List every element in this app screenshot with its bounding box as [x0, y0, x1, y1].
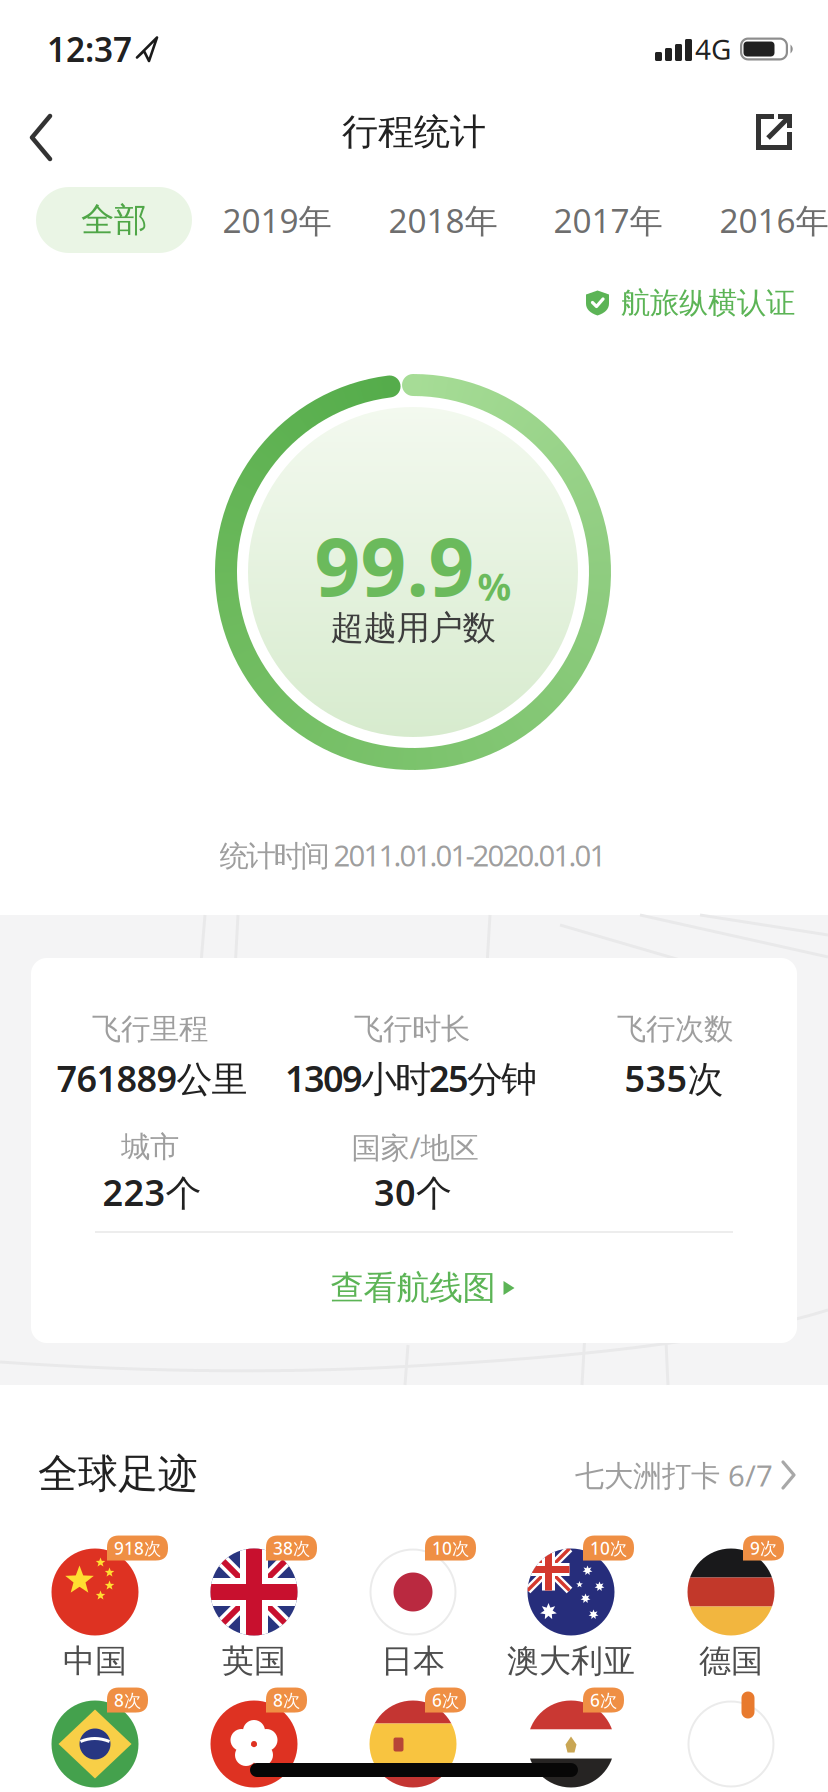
button[interactable]: 七大洲打卡 6/7 [475, 1453, 795, 1497]
staticText: % [477, 561, 511, 611]
staticText: 99.9 [314, 512, 474, 618]
button[interactable]: Share [756, 114, 792, 150]
staticText: 七大洲打卡 6/7 [575, 1455, 773, 1494]
button[interactable]: 2016年 [719, 187, 828, 253]
button[interactable]: 全部 [36, 187, 192, 253]
staticText: 8次 [114, 1688, 141, 1711]
staticText: 2017年 [553, 198, 662, 242]
button[interactable]: 航旅纵横认证 [586, 285, 795, 321]
staticText: 8次 [273, 1688, 300, 1711]
staticText: 全部 [81, 199, 147, 240]
staticText: 761889公里 [56, 1054, 247, 1102]
staticText: 10次 [590, 1536, 627, 1559]
button[interactable]: 埃及 [496, 1639, 646, 1792]
staticText: 德国 [699, 1641, 763, 1681]
button[interactable]: 日本 [338, 1487, 488, 1697]
button[interactable]: 澳大利亚 [496, 1487, 646, 1697]
button[interactable]: 德国 [656, 1487, 806, 1697]
staticText: 2016年 [719, 198, 828, 242]
staticText: 1309小时25分钟 [285, 1054, 537, 1102]
button[interactable]: 更多国家 [656, 1639, 806, 1792]
staticText: 223个 [102, 1168, 201, 1216]
staticText: 澳大利亚 [507, 1641, 635, 1681]
staticText: 飞行里程 [92, 1011, 208, 1047]
staticText: 城市 [121, 1129, 179, 1165]
staticText: 英国 [222, 1641, 286, 1681]
staticText: 535次 [624, 1054, 723, 1102]
staticText: 飞行次数 [617, 1011, 733, 1047]
button[interactable]: 查看航线图 [330, 1267, 515, 1308]
button[interactable]: 2017年 [553, 187, 662, 253]
button[interactable]: 2018年 [388, 187, 497, 253]
staticText: 全球足迹 [38, 1449, 198, 1498]
staticText: 6次 [590, 1688, 617, 1711]
staticText: 10次 [432, 1536, 469, 1559]
button[interactable]: 香港 [179, 1639, 329, 1792]
staticText: 航旅纵横认证 [621, 285, 795, 321]
staticText: 4G [695, 30, 731, 68]
staticText: 2019年 [222, 198, 331, 242]
staticText: 日本 [381, 1641, 445, 1681]
staticText: 统计时间 2011.01.01-2020.01.01 [219, 835, 606, 874]
button[interactable]: Back [30, 116, 54, 160]
staticText: 国家/地区 [351, 1127, 478, 1166]
staticText: 查看航线图 [330, 1267, 495, 1308]
staticText: 6次 [432, 1688, 459, 1711]
staticText: 中国 [63, 1641, 127, 1681]
staticText: 2018年 [388, 198, 497, 242]
button[interactable]: 西班牙 [338, 1639, 488, 1792]
staticText: 30个 [374, 1168, 452, 1216]
staticText: 9次 [750, 1536, 777, 1559]
button[interactable]: 2019年 [222, 187, 331, 253]
staticText: 行程统计 [342, 110, 486, 154]
staticText: 38次 [273, 1536, 310, 1559]
staticText: 918次 [114, 1536, 161, 1559]
button[interactable]: 巴西 [20, 1639, 170, 1792]
button[interactable]: 中国 [20, 1487, 170, 1697]
staticText: 超越用户数 [330, 607, 495, 648]
staticText: 飞行时长 [354, 1011, 470, 1047]
staticText: 12:37 [47, 27, 132, 71]
button[interactable]: 英国 [179, 1487, 329, 1697]
